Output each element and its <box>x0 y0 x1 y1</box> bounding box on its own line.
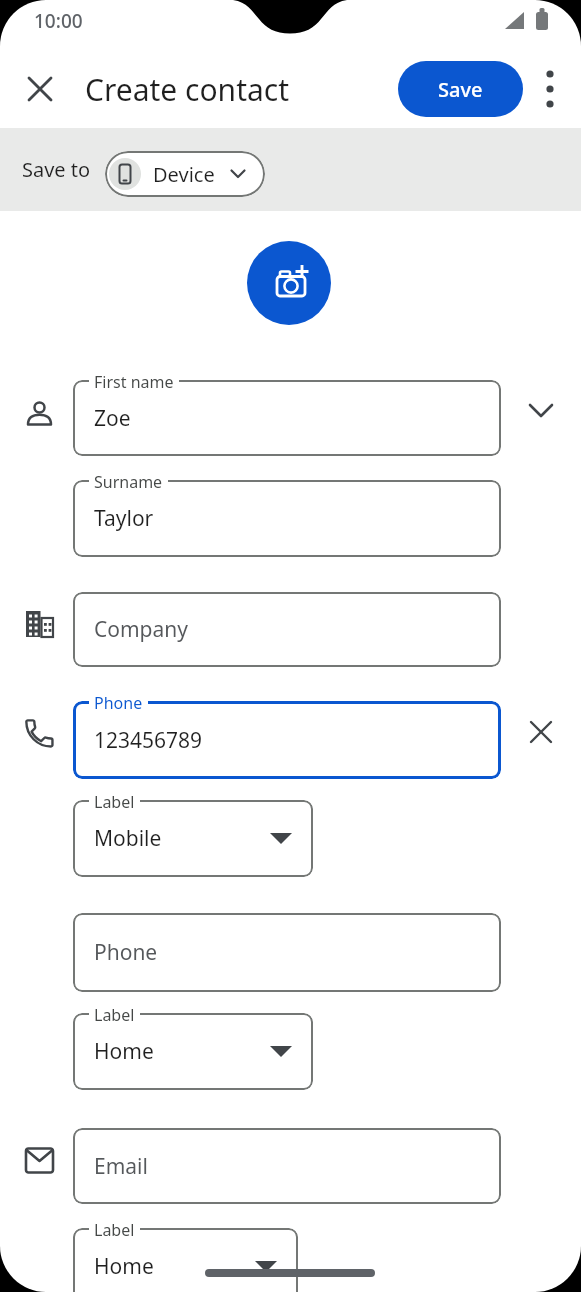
staticText: Device <box>153 161 215 188</box>
button[interactable] <box>73 1228 298 1292</box>
staticText: Taylor <box>94 504 154 533</box>
staticText: Phone <box>94 692 143 714</box>
staticText: Label <box>94 1219 135 1241</box>
button[interactable] <box>73 701 501 779</box>
staticText: Company <box>94 615 188 644</box>
staticText: Save to <box>22 156 91 183</box>
button[interactable] <box>73 1013 313 1090</box>
staticText: First name <box>94 371 174 393</box>
staticText: Zoe <box>94 404 131 433</box>
button[interactable] <box>535 71 565 107</box>
staticText: 10:00 <box>34 8 83 32</box>
button[interactable] <box>270 833 292 844</box>
staticText: Email <box>94 1152 148 1181</box>
button[interactable] <box>73 592 501 667</box>
button[interactable] <box>73 480 501 557</box>
button[interactable] <box>73 1128 501 1204</box>
staticText: 123456789 <box>94 726 203 755</box>
button[interactable] <box>523 393 559 429</box>
button[interactable] <box>73 913 501 992</box>
button[interactable] <box>255 1261 277 1272</box>
staticText: Home <box>94 1037 154 1066</box>
button[interactable]: Save <box>398 61 523 117</box>
button[interactable] <box>73 800 313 877</box>
staticText: Create contact <box>85 69 290 110</box>
staticText: Surname <box>94 471 163 493</box>
staticText: Label <box>94 1004 135 1026</box>
button[interactable] <box>523 714 559 750</box>
button[interactable]: Device <box>105 151 265 197</box>
staticText: Phone <box>94 938 158 967</box>
staticText: Save <box>438 76 483 103</box>
button[interactable] <box>73 380 501 456</box>
button[interactable] <box>270 1046 292 1057</box>
button[interactable] <box>22 71 58 107</box>
staticText: Mobile <box>94 824 162 853</box>
staticText: Home <box>94 1252 154 1281</box>
button[interactable] <box>247 241 331 325</box>
staticText: Label <box>94 791 135 813</box>
